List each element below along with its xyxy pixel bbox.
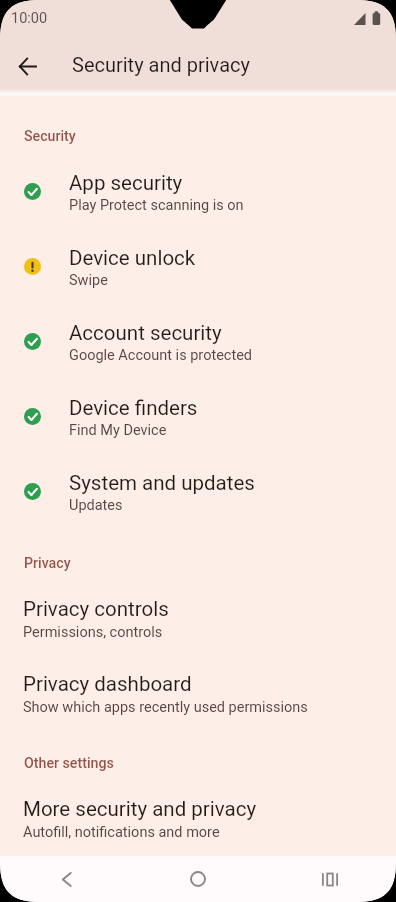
- staticText: Google Account is protected: [69, 347, 253, 364]
- button[interactable]: More security and privacy: [0, 793, 396, 863]
- button[interactable]: Device unlock: [0, 242, 396, 312]
- staticText: More security and privacy: [23, 797, 257, 821]
- staticText: Show which apps recently used permission…: [23, 699, 308, 716]
- button[interactable]: Home: [132, 856, 264, 902]
- staticText: Device unlock: [69, 246, 196, 270]
- button[interactable]: System and updates: [0, 467, 396, 537]
- staticText: Device finders: [69, 396, 198, 420]
- staticText: Privacy dashboard: [23, 672, 192, 696]
- staticText: Play Protect scanning is on: [69, 197, 244, 214]
- button[interactable]: Account security: [0, 317, 396, 387]
- staticText: Autofill, notifications and more: [23, 824, 220, 841]
- staticText: 10:00: [11, 10, 48, 27]
- staticText: App security: [69, 171, 183, 195]
- staticText: Find My Device: [69, 422, 167, 439]
- staticText: Other settings: [24, 755, 114, 772]
- staticText: Security: [24, 128, 76, 145]
- button[interactable]: Back: [0, 856, 132, 902]
- staticText: System and updates: [69, 471, 255, 495]
- staticText: Swipe: [69, 272, 108, 289]
- staticText: Updates: [69, 497, 123, 514]
- staticText: Permissions, controls: [23, 624, 163, 641]
- button[interactable]: Privacy controls: [0, 593, 396, 663]
- staticText: Privacy: [24, 555, 71, 572]
- staticText: Security and privacy: [72, 53, 250, 76]
- button[interactable]: App security: [0, 167, 396, 237]
- button[interactable]: Device finders: [0, 392, 396, 462]
- button[interactable]: Back: [7, 46, 47, 86]
- staticText: Privacy controls: [23, 597, 169, 621]
- staticText: Account security: [69, 321, 222, 345]
- button[interactable]: Privacy dashboard: [0, 668, 396, 738]
- button[interactable]: Recent apps: [264, 856, 396, 902]
